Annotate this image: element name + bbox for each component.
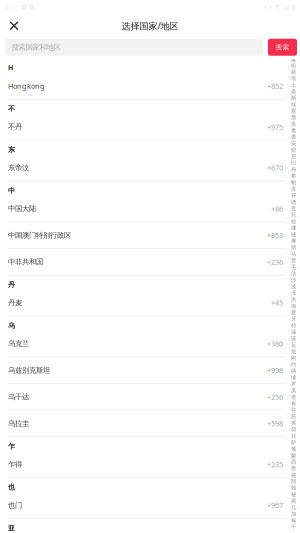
staticText: 芬	[291, 406, 296, 413]
staticText: 阿	[291, 478, 296, 485]
staticText: 泽	[291, 289, 296, 296]
staticText: 瓦	[291, 341, 296, 348]
staticText: 巴	[291, 159, 296, 166]
staticText: 萨	[291, 439, 296, 446]
staticText: 匈	[291, 517, 296, 524]
staticText: 越	[291, 471, 296, 478]
button[interactable]: 搜索	[268, 39, 297, 56]
staticText: 乍得	[8, 460, 22, 469]
staticText: 密	[291, 146, 296, 153]
staticText: 斯	[291, 94, 296, 101]
button[interactable]: 丹麦	[0, 290, 300, 316]
button[interactable]: 东帝汶	[0, 155, 300, 181]
staticText: 圣	[291, 88, 296, 95]
staticText: 塞	[291, 107, 296, 114]
staticText: 德	[291, 198, 296, 205]
staticText: 多	[291, 120, 296, 127]
staticText: 塔	[291, 75, 296, 82]
button[interactable]: 乌克兰	[0, 331, 300, 357]
button[interactable]: 乌兹别克斯坦	[0, 357, 300, 384]
staticText: 韩	[291, 484, 296, 491]
staticText: 瑞	[291, 328, 296, 335]
staticText: 布	[291, 166, 296, 173]
staticText: 托	[291, 211, 296, 218]
staticText: 乌干达	[8, 392, 29, 401]
staticText: 乌	[8, 321, 15, 330]
staticText: 荷	[291, 426, 296, 433]
button[interactable]: 中国澳门特别行政区	[0, 222, 300, 249]
staticText: 奥	[291, 127, 296, 134]
staticText: 尼	[291, 153, 296, 160]
staticText: 希	[291, 172, 296, 179]
staticText: Hongkong	[8, 81, 45, 91]
staticText: 英	[291, 419, 296, 426]
button[interactable]: 也门	[0, 492, 300, 519]
staticText: 爱	[291, 309, 296, 316]
staticText: 约	[291, 361, 296, 368]
staticText: 斯	[291, 244, 296, 251]
staticText: 乌兹别克斯坦	[8, 366, 50, 375]
staticText: 搜索国家和地区	[11, 42, 60, 52]
staticText: 葡	[291, 445, 296, 452]
staticText: 特	[291, 322, 296, 329]
button[interactable]: 不丹	[0, 114, 300, 140]
staticText: 中国大陆	[8, 204, 36, 213]
staticText: 搜索	[275, 43, 289, 51]
staticText: 千	[291, 523, 296, 530]
staticText: 老	[291, 393, 296, 400]
button[interactable]: 中非共和国	[0, 249, 300, 275]
staticText: 法	[291, 270, 296, 277]
staticText: 肯	[291, 400, 296, 407]
staticText: 乍	[8, 442, 15, 451]
staticText: 不丹	[8, 122, 22, 131]
staticText: +86	[271, 204, 283, 213]
staticText: 东帝汶	[8, 163, 29, 172]
staticText: 哈	[291, 62, 296, 69]
staticText: 意	[291, 205, 296, 212]
staticText: 黑	[291, 497, 296, 504]
staticText: 帕	[291, 179, 296, 186]
button[interactable]: 中国大陆	[0, 196, 300, 222]
button[interactable]: 乍得	[0, 451, 300, 478]
staticText: +236	[267, 257, 283, 267]
staticText: 美	[291, 387, 296, 394]
staticText: 丹	[8, 280, 15, 289]
staticText: 新	[291, 68, 296, 75]
staticText: 洪	[291, 296, 296, 303]
staticText: 土	[291, 81, 296, 88]
staticText: +670	[267, 163, 283, 173]
staticText: 纳	[291, 367, 296, 374]
staticText: 梵	[291, 257, 296, 264]
staticText: 亚	[8, 524, 15, 532]
staticText: 委	[291, 133, 296, 140]
staticText: 秘	[291, 491, 296, 498]
staticText: +852	[267, 81, 283, 91]
button[interactable]: Index	[289, 59, 297, 533]
staticText: 拉	[291, 218, 296, 225]
button[interactable]: 乌干达	[0, 384, 300, 410]
staticText: 中国澳门特别行政区	[8, 231, 71, 240]
staticText: 墨	[291, 114, 296, 121]
staticText: +998	[267, 365, 283, 375]
staticText: 乌克兰	[8, 339, 29, 348]
staticText: 海	[291, 302, 296, 309]
staticText: 刚	[291, 354, 296, 361]
staticText: 西	[291, 458, 296, 465]
button[interactable]: 乌拉圭	[0, 411, 300, 437]
staticText: 波	[291, 283, 296, 290]
staticText: 不	[8, 104, 15, 113]
staticText: +235	[267, 459, 283, 469]
staticText: 危	[291, 348, 296, 355]
staticText: 加	[291, 510, 296, 517]
staticText: 毛	[291, 263, 296, 270]
staticText: +380	[267, 339, 283, 348]
button[interactable]: Hongkong	[0, 73, 300, 100]
staticText: H	[8, 63, 13, 72]
staticText: +256	[267, 392, 283, 402]
button[interactable]: Close	[0, 15, 28, 37]
staticText: 东	[8, 145, 15, 154]
staticText: +853	[267, 230, 283, 240]
staticText: 选择国家/地区	[121, 20, 178, 32]
staticText: 缅	[291, 374, 296, 381]
staticText: 挪	[291, 224, 296, 231]
